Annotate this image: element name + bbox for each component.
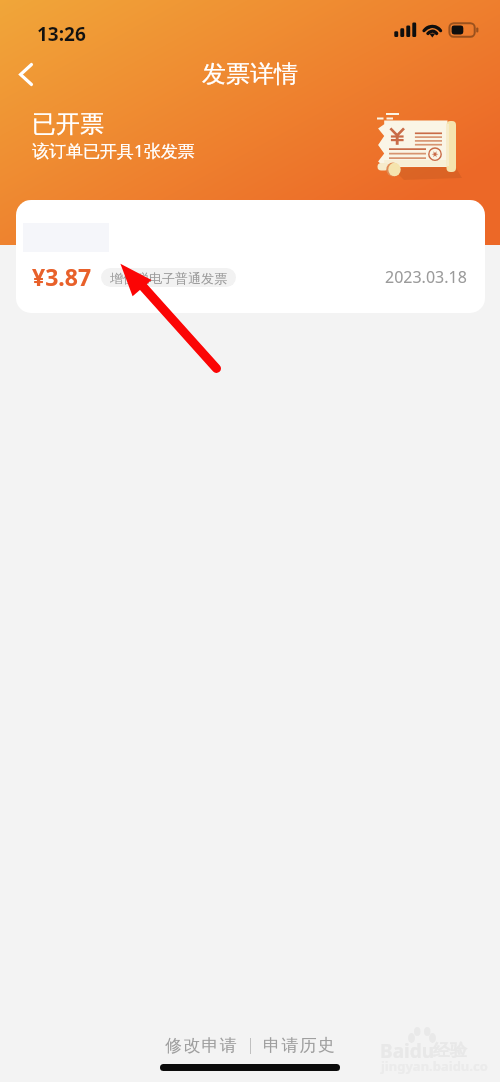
staticText: ¥3.87 bbox=[32, 261, 92, 287]
staticText: 修改申请 bbox=[165, 1035, 238, 1056]
staticText: 经验 bbox=[433, 1040, 467, 1061]
staticText: 申请历史 bbox=[263, 1035, 336, 1056]
staticText: 增值税电子普通发票 bbox=[110, 270, 227, 286]
button[interactable]: 申请历史 bbox=[251, 1029, 348, 1062]
staticText: 已开票 bbox=[32, 109, 104, 139]
staticText: 13:26 bbox=[37, 21, 86, 47]
staticText: Baidu bbox=[380, 1038, 435, 1064]
button[interactable]: Back bbox=[4, 52, 48, 96]
button[interactable]: 修改申请 bbox=[153, 1029, 250, 1062]
staticText: 发票详情 bbox=[202, 59, 298, 89]
button[interactable]: ¥3.87 bbox=[16, 200, 485, 313]
staticText: 2023.03.18 bbox=[385, 266, 467, 288]
staticText: 该订单已开具1张发票 bbox=[32, 139, 195, 162]
